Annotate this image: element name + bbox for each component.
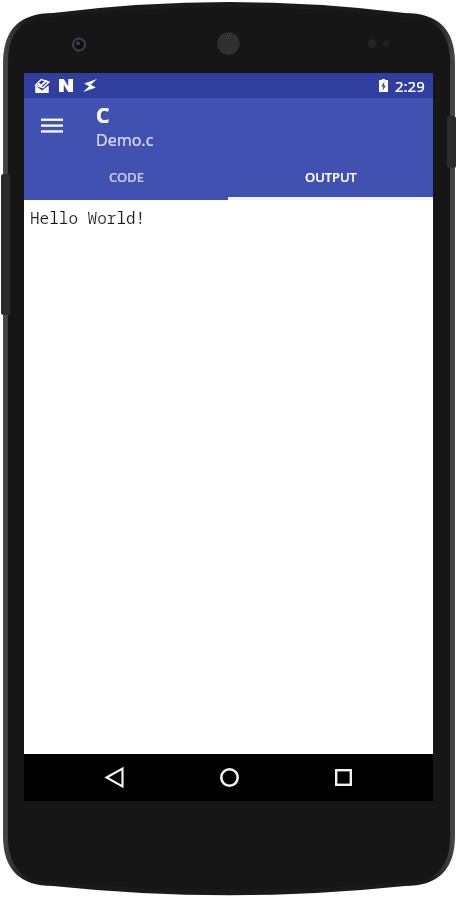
staticText: C xyxy=(96,101,110,130)
staticText: 2:29 xyxy=(395,76,425,96)
button[interactable]: Back xyxy=(57,754,172,801)
button[interactable]: Recent apps xyxy=(286,754,400,801)
button[interactable]: Open navigation drawer xyxy=(28,101,76,149)
staticText: Demo.c xyxy=(96,129,154,151)
button[interactable]: CODE xyxy=(24,165,228,200)
staticText: Hello World! xyxy=(30,207,146,229)
staticText: OUTPUT xyxy=(305,168,357,186)
staticText: CODE xyxy=(109,168,144,186)
button[interactable]: OUTPUT xyxy=(228,165,433,200)
button[interactable]: Home xyxy=(172,754,286,801)
